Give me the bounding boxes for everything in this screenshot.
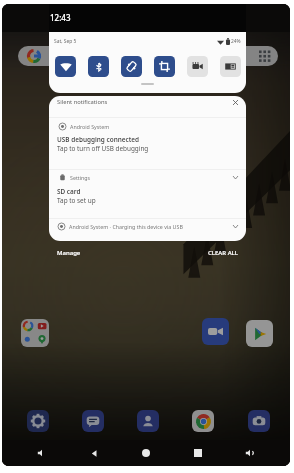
button[interactable]: Camera (248, 410, 270, 432)
staticText: Settings (70, 174, 91, 181)
button[interactable]: Contacts (137, 410, 159, 432)
button[interactable]: Quick setting (187, 56, 208, 77)
staticText: Silent notifications (57, 98, 108, 106)
staticText: CLEAR ALL (208, 249, 238, 257)
button[interactable]: Android System (49, 118, 246, 169)
button[interactable]: Search (18, 46, 278, 66)
staticText: SD card (57, 187, 81, 196)
button[interactable]: Settings (49, 167, 246, 217)
button[interactable]: Quick setting (154, 56, 175, 77)
button[interactable]: Volume down (30, 441, 54, 465)
button[interactable]: Dismiss (230, 97, 240, 107)
staticText: 24% (231, 38, 241, 45)
button[interactable]: Duo (202, 318, 229, 345)
button[interactable]: Play Store (246, 320, 273, 347)
staticText: USB debugging connected (57, 135, 140, 144)
button[interactable]: Chrome (192, 410, 214, 432)
button[interactable]: Volume up (238, 441, 262, 465)
button[interactable]: Quick setting (88, 56, 109, 77)
button[interactable]: Settings (27, 410, 49, 432)
staticText: Manage (57, 249, 81, 257)
button[interactable]: Android System · Charging this device vi… (58, 217, 240, 235)
button[interactable]: Quick setting (55, 56, 76, 77)
button[interactable]: Expand (230, 221, 240, 231)
button[interactable]: Manage (57, 249, 81, 257)
button[interactable]: Recents (186, 441, 210, 465)
button[interactable]: Home (134, 441, 158, 465)
button[interactable]: Quick setting (220, 56, 241, 77)
staticText: Sat, Sep 5 (54, 38, 77, 45)
button[interactable]: Google folder (21, 319, 49, 347)
staticText: 12:43 (50, 12, 71, 23)
staticText: Tap to set up (57, 196, 96, 205)
button[interactable]: Messages (82, 410, 104, 432)
staticText: Android System · Charging this device vi… (69, 223, 183, 230)
staticText: Android System (70, 123, 110, 130)
button[interactable]: Back (82, 441, 106, 465)
staticText: Tap to turn off USB debugging (57, 144, 149, 153)
button[interactable]: Silent notifications (57, 96, 240, 108)
button[interactable]: CLEAR ALL (208, 249, 238, 257)
button[interactable]: Expand (230, 172, 240, 182)
button[interactable]: Quick setting (121, 56, 142, 77)
